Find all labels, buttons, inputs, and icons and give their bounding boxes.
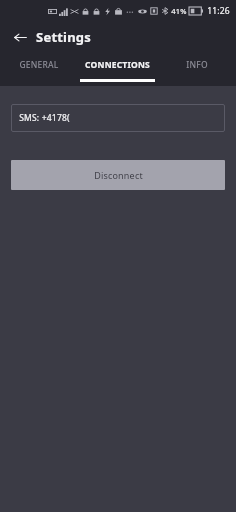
staticText: 11:26 xyxy=(207,5,230,17)
staticText: Settings xyxy=(36,28,91,46)
staticText: ··· xyxy=(126,6,134,17)
button[interactable]: SMS: +4178( xyxy=(11,104,225,132)
button[interactable]: Disconnect xyxy=(11,160,225,190)
staticText: CONNECTIONS xyxy=(85,59,150,71)
button[interactable]: Back xyxy=(8,25,32,49)
staticText: 41% xyxy=(171,6,187,16)
staticText: Disconnect xyxy=(94,169,143,181)
button[interactable]: CONNECTIONS xyxy=(78,52,157,86)
button[interactable]: GENERAL xyxy=(0,52,78,86)
button[interactable]: INFO xyxy=(157,52,236,86)
staticText: INFO xyxy=(186,59,208,71)
staticText: SMS: +4178( xyxy=(19,112,70,124)
staticText: GENERAL xyxy=(19,59,59,71)
